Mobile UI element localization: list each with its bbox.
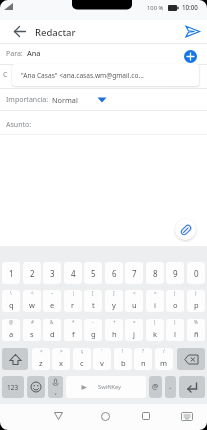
button[interactable]: # xyxy=(23,319,41,341)
staticText: 3 xyxy=(50,268,55,279)
staticText: u xyxy=(132,300,137,310)
staticText: e xyxy=(50,300,55,310)
staticText: ] xyxy=(113,290,115,296)
button[interactable]: & xyxy=(43,319,61,341)
button[interactable]: 8 xyxy=(146,262,164,284)
staticText: 2 xyxy=(30,268,35,279)
staticText: + xyxy=(113,319,116,325)
staticText: v xyxy=(100,358,104,368)
staticText: a xyxy=(9,329,14,339)
button[interactable]: 5 xyxy=(84,262,102,284)
button[interactable]: . xyxy=(165,376,176,398)
button[interactable]: @ xyxy=(149,376,162,398)
button[interactable]: % xyxy=(187,319,205,341)
staticText: / xyxy=(163,348,165,354)
button[interactable] xyxy=(137,407,155,425)
button[interactable] xyxy=(0,88,207,110)
staticText: Importancia: xyxy=(6,95,49,105)
button[interactable]: , xyxy=(48,376,63,398)
staticText: 10:00 xyxy=(182,3,198,11)
button[interactable] xyxy=(27,376,45,398)
staticText: t xyxy=(92,300,95,310)
staticText: i xyxy=(154,300,156,310)
button[interactable]: SwiftKey xyxy=(66,376,146,398)
button[interactable] xyxy=(2,348,28,370)
staticText: Normal xyxy=(52,95,78,105)
staticText: c xyxy=(80,358,84,368)
staticText: 5 xyxy=(91,268,96,279)
staticText: < xyxy=(133,290,136,296)
staticText: ç xyxy=(81,348,84,354)
button[interactable]: ! xyxy=(114,348,132,370)
staticText: "Ana Casas" <ana.casas.wm@gmail.co... xyxy=(21,71,144,80)
button[interactable]: ? xyxy=(134,348,152,370)
button[interactable]: > xyxy=(146,290,164,312)
button[interactable]: = xyxy=(125,319,143,341)
staticText: @ xyxy=(9,319,14,325)
button[interactable]: 7 xyxy=(125,262,143,284)
staticText: 6 xyxy=(112,268,117,279)
staticText: , xyxy=(55,387,57,397)
button[interactable]: ( xyxy=(146,319,164,341)
staticText: r xyxy=(71,300,75,310)
staticText: j xyxy=(133,329,135,339)
staticText: 9 xyxy=(173,268,178,279)
button[interactable]: 0 xyxy=(187,262,205,284)
button[interactable] xyxy=(49,407,67,425)
staticText: ~ xyxy=(51,290,54,296)
button[interactable] xyxy=(177,348,205,370)
button[interactable]: 6 xyxy=(105,262,123,284)
button[interactable] xyxy=(0,44,170,64)
staticText: n xyxy=(141,358,146,368)
staticText: 123 xyxy=(7,383,19,392)
button[interactable]: * xyxy=(64,319,82,341)
button[interactable]: > xyxy=(52,348,70,370)
button[interactable]: @ xyxy=(2,319,20,341)
button[interactable]: + xyxy=(105,319,123,341)
button[interactable] xyxy=(175,219,196,240)
staticText: ) xyxy=(174,319,176,325)
staticText: . xyxy=(169,380,172,391)
button[interactable] xyxy=(96,407,114,425)
button[interactable]: < xyxy=(32,348,50,370)
button[interactable]: ç xyxy=(73,348,91,370)
button[interactable]: [ xyxy=(84,290,102,312)
button[interactable]: ) xyxy=(166,319,184,341)
button[interactable]: 123 xyxy=(2,376,24,398)
button[interactable]: 1 xyxy=(2,262,20,284)
staticText: h xyxy=(112,329,117,339)
button[interactable] xyxy=(180,21,206,42)
button[interactable]: / xyxy=(155,348,173,370)
button[interactable] xyxy=(0,111,207,134)
button[interactable] xyxy=(184,50,197,63)
staticText: Asunto: xyxy=(6,120,32,130)
button[interactable]: | xyxy=(64,290,82,312)
button[interactable]: - xyxy=(84,319,102,341)
button[interactable]: ' xyxy=(93,348,111,370)
button[interactable]: \ xyxy=(2,290,20,312)
button[interactable]: ^ xyxy=(23,290,41,312)
staticText: % xyxy=(194,319,198,325)
staticText: Ana xyxy=(27,48,41,58)
button[interactable]: 9 xyxy=(166,262,184,284)
button[interactable]: 3 xyxy=(43,262,61,284)
staticText: ' xyxy=(101,348,103,354)
staticText: q xyxy=(9,300,14,310)
button[interactable]: ~ xyxy=(43,290,61,312)
button[interactable]: "Ana Casas" <ana.casas.wm@gmail.co... xyxy=(12,64,199,86)
button[interactable]: ] xyxy=(105,290,123,312)
staticText: C xyxy=(3,70,8,80)
button[interactable]: < xyxy=(125,290,143,312)
staticText: & xyxy=(50,319,54,325)
button[interactable]: 2 xyxy=(23,262,41,284)
button[interactable] xyxy=(6,22,28,42)
button[interactable] xyxy=(179,376,205,398)
button[interactable]: ( xyxy=(166,290,184,312)
staticText: | xyxy=(72,290,75,296)
staticText: \ xyxy=(10,290,12,296)
staticText: * xyxy=(72,319,75,325)
button[interactable]: ) xyxy=(187,290,205,312)
staticText: m xyxy=(160,358,168,368)
button[interactable] xyxy=(178,407,196,425)
button[interactable]: 4 xyxy=(64,262,82,284)
